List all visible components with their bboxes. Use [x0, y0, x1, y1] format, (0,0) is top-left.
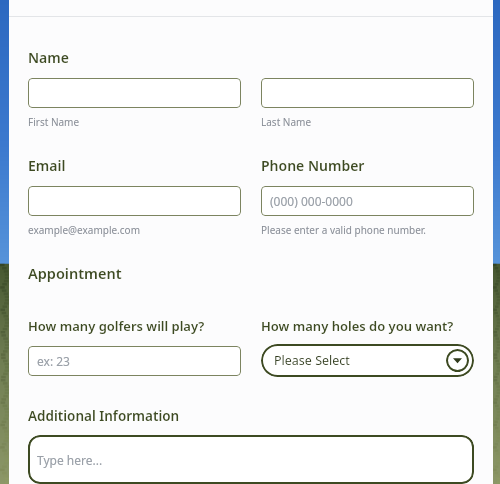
button[interactable] [261, 78, 474, 108]
button[interactable] [28, 78, 241, 108]
other: Open dropdown [446, 349, 469, 372]
staticText: example@example.com [28, 223, 140, 237]
staticText: Phone Number [261, 156, 365, 175]
button[interactable] [28, 186, 241, 216]
staticText: Type here... [37, 452, 103, 468]
staticText: First Name [28, 115, 80, 129]
button[interactable]: ex: 23 [28, 346, 241, 376]
staticText: Please enter a valid phone number. [261, 223, 427, 237]
staticText: Last Name [261, 115, 312, 129]
button[interactable]: (000) 000-0000 [261, 186, 474, 216]
button[interactable]: Type here... [28, 435, 474, 484]
staticText: Please Select [274, 352, 350, 369]
staticText: Email [28, 156, 66, 175]
staticText: Additional Information [28, 407, 180, 425]
button[interactable]: Please Select [261, 344, 474, 377]
staticText: Name [28, 48, 69, 67]
staticText: How many holes do you want? [261, 317, 454, 335]
staticText: (000) 000-0000 [270, 193, 353, 209]
staticText: ex: 23 [37, 353, 70, 369]
staticText: Appointment [28, 263, 122, 283]
staticText: How many golfers will play? [28, 317, 205, 335]
